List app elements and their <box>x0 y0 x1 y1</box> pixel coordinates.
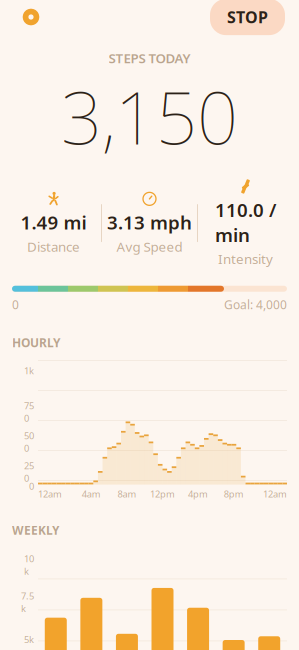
staticText: 4pm <box>188 488 208 500</box>
staticText: 7.5k <box>21 590 34 614</box>
staticText: 12pm <box>150 488 175 500</box>
staticText: Intensity <box>218 250 273 268</box>
staticText: 8am <box>117 488 136 500</box>
staticText: Avg Speed <box>116 238 182 255</box>
staticText: 4am <box>82 488 101 500</box>
staticText: 3.13 mph <box>107 210 192 235</box>
staticText: 0 <box>12 297 19 313</box>
staticText: STEPS TODAY <box>108 49 190 67</box>
staticText: 250 <box>24 459 34 484</box>
button[interactable]: Settings <box>14 0 48 34</box>
staticText: 1.49 mi <box>20 210 86 235</box>
staticText: STOP <box>227 6 268 28</box>
staticText: 500 <box>24 429 34 454</box>
staticText: 3,150 <box>61 69 238 164</box>
staticText: Distance <box>27 238 80 255</box>
staticText: 110.0 /min <box>215 197 276 247</box>
staticText: 12am <box>38 488 62 500</box>
staticText: 0 <box>29 480 34 492</box>
staticText: 750 <box>24 399 34 424</box>
staticText: 1k <box>24 364 34 377</box>
staticText: Goal: 4,000 <box>224 297 287 313</box>
staticText: 12am <box>263 488 287 500</box>
staticText: HOURLY <box>12 335 61 351</box>
button[interactable]: STOP <box>210 0 285 35</box>
staticText: 8pm <box>224 488 244 500</box>
staticText: 10k <box>24 552 34 577</box>
staticText: 5k <box>24 633 34 645</box>
staticText: WEEKLY <box>12 522 60 538</box>
